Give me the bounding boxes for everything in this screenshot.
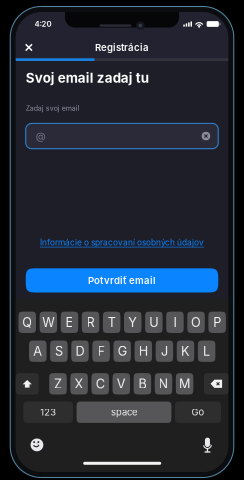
staticText: P — [213, 315, 221, 330]
staticText: T — [108, 315, 116, 330]
button[interactable]: M — [176, 373, 193, 394]
button[interactable]: X — [70, 373, 88, 394]
staticText: Informácie o spracovaní osobných údajov — [40, 237, 204, 247]
staticText: Zadaj svoj email — [26, 104, 80, 112]
button[interactable]: N — [155, 373, 172, 394]
staticText: W — [42, 315, 54, 330]
staticText: M — [179, 376, 190, 391]
staticText: C — [96, 376, 105, 391]
button[interactable]: Go — [175, 401, 221, 423]
staticText: S — [55, 343, 63, 359]
button[interactable]: F — [92, 340, 110, 362]
staticText: F — [98, 343, 105, 359]
button[interactable]: D — [71, 340, 89, 362]
staticText: Registrácia — [95, 42, 149, 53]
button[interactable]: Informácie o spracovaní osobných údajov — [26, 238, 218, 247]
button[interactable]: R — [82, 312, 99, 333]
button[interactable]: Dictate — [197, 437, 218, 453]
staticText: Z — [54, 376, 62, 391]
staticText: A — [33, 343, 42, 359]
button[interactable]: L — [198, 340, 215, 362]
staticText: J — [161, 343, 168, 359]
button[interactable]: E — [61, 312, 78, 333]
staticText: E — [65, 315, 73, 330]
staticText: N — [158, 376, 168, 391]
button[interactable]: H — [134, 340, 152, 362]
button[interactable]: A — [29, 340, 46, 362]
staticText: R — [86, 315, 94, 330]
button[interactable]: S — [50, 340, 68, 362]
staticText: 4:20 — [34, 19, 51, 29]
button[interactable]: P — [208, 312, 226, 333]
button[interactable]: Emoji keyboard — [26, 437, 47, 453]
button[interactable]: I — [166, 312, 184, 333]
button[interactable]: U — [145, 312, 163, 333]
button[interactable]: K — [177, 340, 194, 362]
button[interactable]: Clear text — [202, 132, 210, 140]
staticText: space — [111, 407, 137, 418]
staticText: Potvrdiť email — [88, 275, 156, 286]
button[interactable]: Z — [49, 373, 67, 394]
staticText: H — [139, 343, 148, 359]
button[interactable]: space — [77, 401, 171, 423]
staticText: @ — [36, 130, 46, 142]
button[interactable]: 123 — [23, 401, 73, 423]
staticText: L — [203, 343, 210, 359]
staticText: Q — [22, 315, 32, 330]
button[interactable]: J — [156, 340, 173, 362]
staticText: X — [75, 376, 84, 391]
button[interactable]: G — [113, 340, 131, 362]
button[interactable]: Q — [18, 312, 36, 333]
staticText: 123 — [40, 407, 56, 418]
button[interactable]: V — [113, 373, 130, 394]
staticText: Svoj email zadaj tu — [26, 70, 149, 86]
staticText: B — [138, 376, 146, 391]
staticText: D — [75, 343, 84, 359]
staticText: O — [191, 315, 201, 330]
button[interactable]: Close — [19, 35, 39, 55]
button[interactable]: C — [91, 373, 109, 394]
staticText: K — [181, 343, 190, 359]
button[interactable]: T — [103, 312, 120, 333]
staticText: U — [149, 315, 158, 330]
button[interactable]: W — [40, 312, 57, 333]
button[interactable]: Potvrdiť email — [26, 268, 218, 292]
staticText: G — [118, 343, 127, 359]
button[interactable]: B — [134, 373, 151, 394]
staticText: V — [117, 376, 126, 391]
staticText: Go — [191, 407, 204, 418]
staticText: I — [173, 315, 176, 330]
button[interactable]: Shift — [16, 373, 39, 394]
button[interactable]: Y — [124, 312, 141, 333]
button[interactable]: Delete — [204, 373, 229, 394]
staticText: Y — [128, 315, 137, 330]
button[interactable]: O — [187, 312, 205, 333]
